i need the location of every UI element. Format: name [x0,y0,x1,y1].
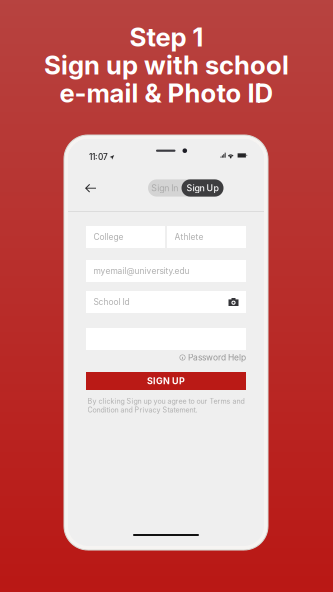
staticText: myemail@university.edu [93,266,189,276]
staticText: Sign In [151,183,178,193]
staticText: School Id [93,297,129,307]
staticText: Sign up with school [44,49,289,81]
staticText: Athlete [174,232,203,242]
staticText: College [93,232,123,242]
staticText: Password Help [188,352,246,363]
staticText: e-mail & Photo ID [59,77,273,109]
button[interactable]: Password Help [86,351,246,364]
staticText: By clicking Sign up you agree to our Ter… [87,397,244,414]
staticText: 11:07 [89,152,108,162]
button[interactable]: SIGN UP [86,372,246,390]
button[interactable]: Back [80,179,100,197]
staticText: Step 1 [129,21,203,53]
button[interactable]: Sign Up [181,179,223,197]
staticText: Sign Up [186,183,218,193]
button[interactable]: Sign In [148,179,181,197]
staticText: SIGN UP [147,376,185,386]
